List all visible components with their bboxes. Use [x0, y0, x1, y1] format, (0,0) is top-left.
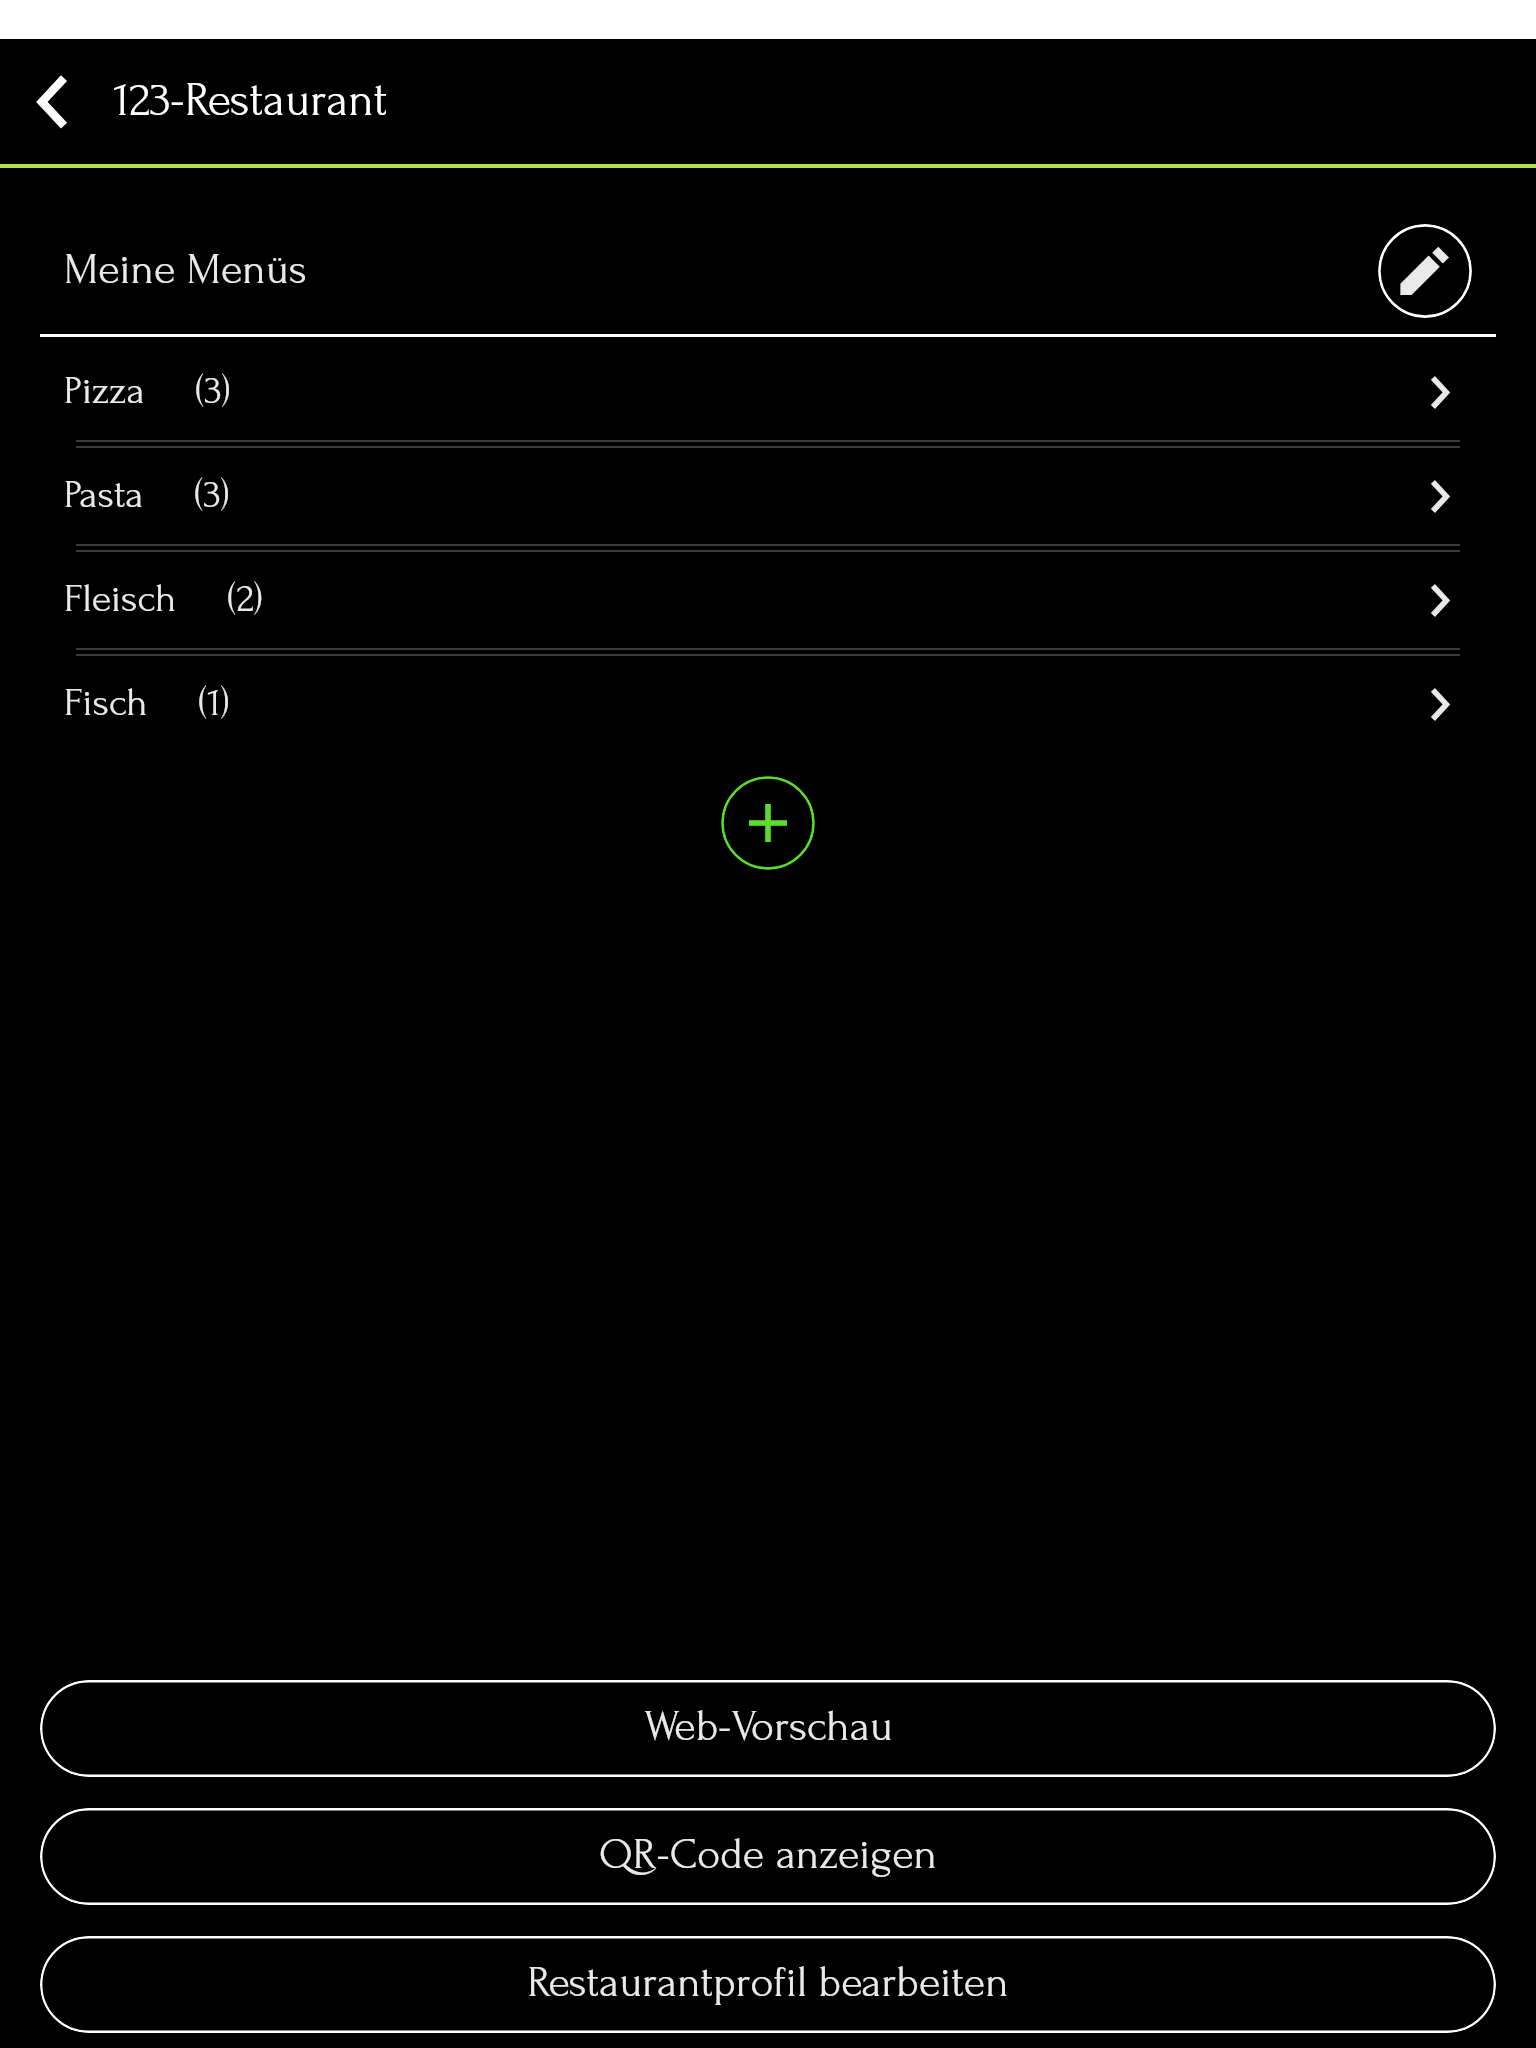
staticText: Restaurantprofil bearbeiten [527, 1958, 1009, 2007]
staticText: (2) [228, 577, 263, 621]
staticText: (3) [196, 369, 231, 413]
button[interactable]: Fisch [0, 655, 1536, 753]
button[interactable]: QR-Code anzeigen [40, 1808, 1496, 1905]
button[interactable]: Web-Vorschau [40, 1680, 1496, 1777]
button[interactable]: Pizza [0, 343, 1536, 440]
button[interactable]: Restaurantprofil bearbeiten [40, 1936, 1496, 2033]
button[interactable]: Pasta [0, 447, 1536, 544]
staticText: (3) [195, 473, 230, 517]
button[interactable]: Back [0, 39, 104, 164]
staticText: Fisch [64, 681, 148, 725]
staticText: Web-Vorschau [644, 1702, 893, 1751]
button[interactable]: Add menu [721, 776, 815, 870]
button[interactable]: Edit menus [1378, 224, 1472, 318]
staticText: 123-Restaurant [114, 74, 388, 127]
button[interactable]: Fleisch [0, 551, 1536, 648]
staticText: QR-Code anzeigen [599, 1830, 937, 1879]
staticText: Fleisch [64, 577, 177, 621]
staticText: Meine Menüs [64, 245, 307, 294]
staticText: Pasta [64, 473, 144, 517]
staticText: Pizza [64, 369, 145, 413]
staticText: (1) [199, 681, 230, 725]
